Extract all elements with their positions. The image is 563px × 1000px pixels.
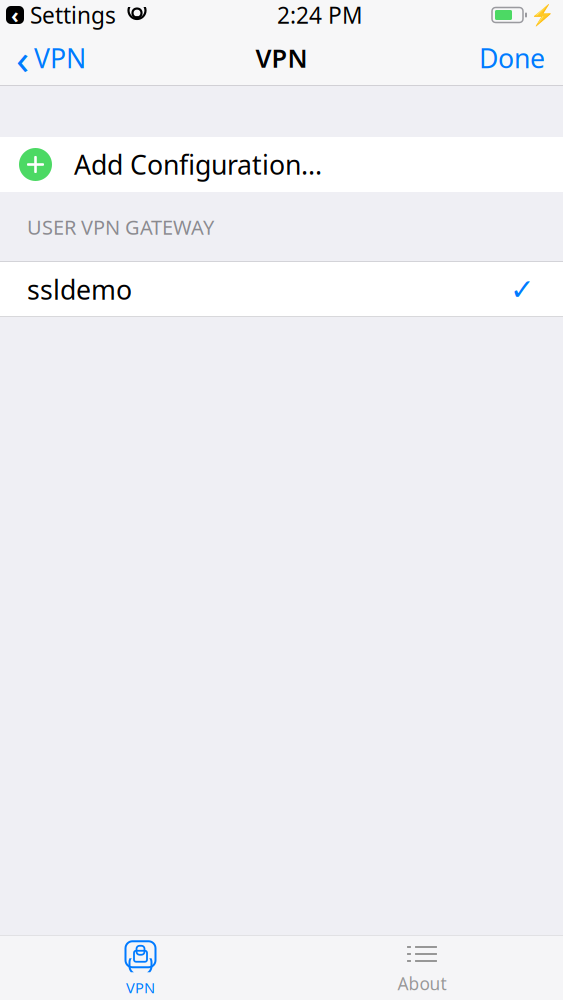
button[interactable]: Add Configuration...: [0, 137, 563, 192]
button[interactable]: Done: [467, 30, 563, 86]
staticText: ‹: [16, 30, 29, 86]
staticText: Done: [479, 40, 545, 76]
staticText: ✓: [510, 273, 535, 306]
staticText: Add Configuration...: [74, 147, 322, 182]
staticText: ssldemo: [27, 272, 132, 307]
staticText: Settings: [30, 0, 116, 30]
staticText: About: [397, 972, 446, 995]
staticText: VPN: [34, 40, 86, 76]
staticText: ⚡: [530, 4, 555, 26]
staticText: USER VPN GATEWAY: [27, 214, 214, 240]
staticText: VPN: [126, 978, 155, 997]
button[interactable]: ssldemo: [0, 262, 563, 317]
staticText: VPN: [255, 41, 307, 75]
button[interactable]: ‹: [0, 30, 96, 86]
staticText: 2:24 PM: [277, 0, 363, 30]
button[interactable]: About: [281, 935, 563, 1000]
button[interactable]: VPN: [0, 935, 281, 1000]
staticText: ‹: [11, 1, 19, 29]
